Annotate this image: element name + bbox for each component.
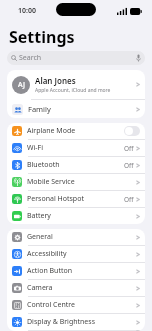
staticText: Family [28, 104, 136, 114]
staticText: Alan Jones [35, 75, 76, 86]
button[interactable]: Personal Hotspot [7, 191, 145, 207]
staticText: General [27, 232, 136, 242]
button[interactable]: Airplane Mode [7, 123, 145, 139]
staticText: Action Button [27, 266, 136, 276]
button[interactable]: Wi-Fi [7, 140, 145, 156]
staticText: Off [124, 144, 134, 153]
staticText: Camera [27, 283, 136, 293]
staticText: Accessibility [27, 249, 136, 259]
button[interactable]: Control Centre [7, 297, 145, 313]
staticText: AJ [18, 80, 25, 90]
button[interactable]: Search [7, 51, 145, 65]
button[interactable]: Action Button [7, 263, 145, 279]
button[interactable]: Display & Brightness [7, 314, 145, 330]
button[interactable]: Bluetooth [7, 157, 145, 173]
button[interactable]: Accessibility [7, 246, 145, 262]
staticText: Mobile Service [27, 177, 136, 187]
staticText: Settings [9, 26, 75, 48]
staticText: Apple Account, iCloud and more [35, 87, 111, 94]
button[interactable]: Family [7, 100, 145, 118]
staticText: Personal Hotspot [27, 194, 124, 204]
other: Voice search [136, 54, 141, 62]
staticText: Control Centre [27, 300, 136, 310]
staticText: 10:00 [18, 6, 36, 16]
staticText: Off [124, 161, 134, 170]
staticText: Wi-Fi [27, 143, 124, 153]
button[interactable]: General [7, 229, 145, 245]
staticText: Off [124, 195, 134, 204]
staticText: Display & Brightness [27, 317, 136, 327]
button[interactable]: Battery [7, 208, 145, 224]
staticText: Search [19, 53, 42, 63]
button[interactable]: Camera [7, 280, 145, 296]
button[interactable]: AJ [7, 70, 145, 99]
staticText: Airplane Mode [27, 126, 124, 136]
staticText: Battery [27, 211, 136, 221]
button[interactable]: Airplane Mode toggle [124, 126, 140, 136]
staticText: Bluetooth [27, 160, 124, 170]
button[interactable]: Mobile Service [7, 174, 145, 190]
